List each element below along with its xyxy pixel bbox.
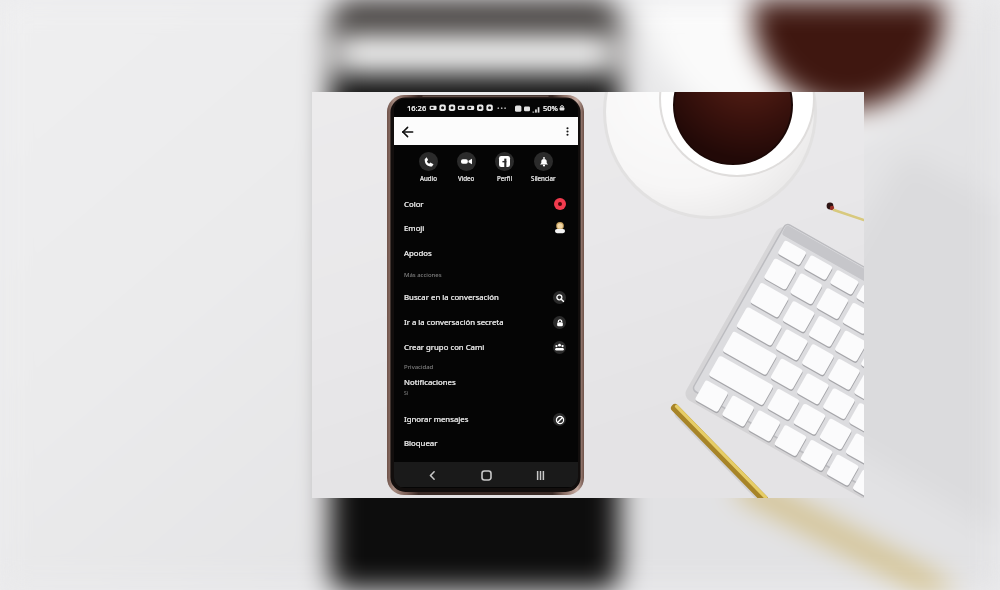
button[interactable]: Video: [447, 152, 485, 182]
staticText: Buscar en la conversación: [404, 292, 499, 303]
button[interactable]: Back: [422, 465, 442, 485]
button[interactable]: Apodos: [394, 242, 578, 264]
staticText: 16:26: [407, 103, 427, 113]
button[interactable]: Bloquear: [394, 432, 578, 454]
staticText: Notificaciones: [404, 377, 456, 388]
button[interactable]: Color: [394, 193, 578, 215]
button[interactable]: Crear grupo con Cami: [394, 336, 578, 358]
staticText: Color: [404, 199, 424, 210]
button[interactable]: Silenciar: [524, 152, 563, 182]
button[interactable]: Perfil: [485, 152, 524, 182]
button[interactable]: Recent apps: [530, 465, 550, 485]
staticText: Privacidad: [404, 363, 434, 371]
button[interactable]: Back: [397, 121, 418, 142]
staticText: Sí: [404, 390, 409, 397]
staticText: Video: [458, 174, 475, 182]
staticText: Ir a la conversación secreta: [404, 317, 504, 328]
button[interactable]: Buscar en la conversación: [394, 286, 578, 308]
button[interactable]: Emoji: [394, 217, 578, 239]
button[interactable]: Notificaciones: [394, 376, 578, 398]
staticText: Apodos: [404, 248, 432, 259]
staticText: 50%: [543, 103, 558, 113]
staticText: Más acciones: [404, 271, 442, 279]
button[interactable]: More options: [561, 125, 573, 137]
staticText: Emoji: [404, 223, 425, 234]
staticText: Perfil: [497, 174, 513, 182]
staticText: Ignorar mensajes: [404, 414, 469, 425]
staticText: Crear grupo con Cami: [404, 342, 485, 353]
staticText: Bloquear: [404, 438, 438, 449]
staticText: Silenciar: [531, 174, 556, 182]
button[interactable]: Ignorar mensajes: [394, 408, 578, 430]
staticText: Audio: [420, 174, 437, 182]
button[interactable]: Home: [476, 465, 496, 485]
button[interactable]: Audio: [409, 152, 447, 182]
button[interactable]: Ir a la conversación secreta: [394, 311, 578, 333]
